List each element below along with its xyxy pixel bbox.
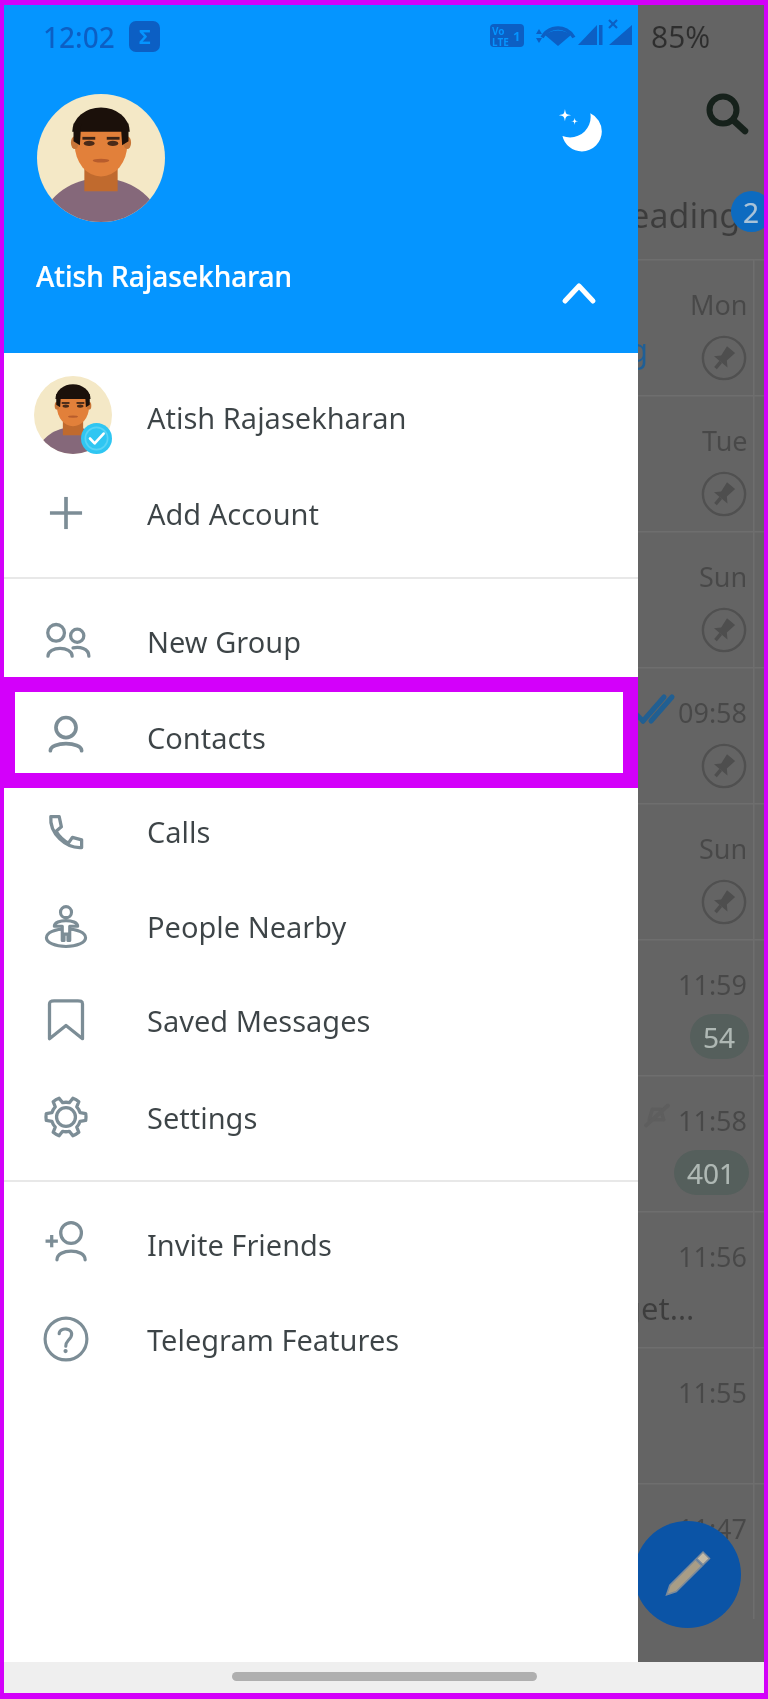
staticText: 11:59 xyxy=(678,966,748,1003)
staticText: Telegram Features xyxy=(147,1320,400,1359)
button[interactable]: Night mode xyxy=(543,94,615,166)
button[interactable]: Expand accounts xyxy=(543,258,615,330)
staticText: 85% xyxy=(651,16,711,57)
button[interactable]: 11:55 xyxy=(638,1347,768,1483)
staticText: 2 xyxy=(743,193,760,231)
button[interactable]: Telegram Features xyxy=(0,1292,638,1386)
staticText: Unreading xyxy=(571,192,741,238)
button[interactable]: Invite Friends xyxy=(0,1197,638,1291)
staticText: New Group xyxy=(147,622,301,661)
button[interactable]: New Group xyxy=(0,594,638,688)
staticText: 1 xyxy=(513,27,521,45)
staticText: Contacts xyxy=(147,718,266,757)
button[interactable]: Saved Messages xyxy=(0,973,638,1067)
staticText: Invite Friends xyxy=(147,1225,332,1264)
staticText: .. xyxy=(622,1015,639,1057)
button[interactable]: 11:58 xyxy=(638,1075,768,1211)
button[interactable]: Tue xyxy=(638,395,768,531)
staticText: Settings xyxy=(147,1098,258,1137)
staticText: Add Account xyxy=(147,494,319,533)
staticText: 11:47 xyxy=(678,1510,748,1547)
staticText: 401 xyxy=(687,1154,736,1192)
button[interactable]: Atish Rajasekharan xyxy=(0,66,520,310)
staticText: Atish Rajasekharan xyxy=(36,257,293,295)
button[interactable]: Contacts xyxy=(0,690,638,784)
button[interactable]: Add Account xyxy=(0,466,638,560)
button[interactable]: Atish Rajasekharan xyxy=(0,370,638,464)
button[interactable]: Settings xyxy=(0,1070,638,1164)
staticText: g xyxy=(628,327,649,372)
button[interactable]: New message xyxy=(634,1521,741,1628)
staticText: Sun xyxy=(699,558,748,595)
staticText: Tue xyxy=(702,422,748,459)
button[interactable]: 11:56 xyxy=(638,1211,768,1347)
button[interactable]: Mon xyxy=(638,259,768,395)
staticText: 11:56 xyxy=(678,1238,748,1275)
staticText: People Nearby xyxy=(147,907,347,946)
staticText: Sun xyxy=(699,830,748,867)
button[interactable]: Unreading xyxy=(560,160,768,258)
staticText: 09:58 xyxy=(678,694,748,731)
staticText: 11:55 xyxy=(678,1374,748,1411)
staticText: 11:58 xyxy=(678,1102,748,1139)
staticText: Vo xyxy=(492,24,505,38)
staticText: 54 xyxy=(703,1018,736,1056)
button[interactable]: 11:47 xyxy=(638,1483,768,1619)
button[interactable]: 09:58 xyxy=(638,667,768,803)
button[interactable]: Sun xyxy=(638,531,768,667)
staticText: Σ xyxy=(139,23,151,50)
staticText: Atish Rajasekharan xyxy=(147,398,407,437)
staticText: 12:02 xyxy=(43,18,115,56)
staticText: Saved Messages xyxy=(147,1001,371,1040)
button[interactable]: People Nearby xyxy=(0,879,638,973)
staticText: Mon xyxy=(690,286,748,323)
button[interactable]: Calls xyxy=(0,784,638,878)
staticText: Calls xyxy=(147,812,211,851)
staticText: LTE xyxy=(492,35,509,47)
button[interactable]: 11:59 xyxy=(638,939,768,1075)
staticText: get… xyxy=(622,1287,695,1329)
button[interactable]: Search xyxy=(690,77,756,143)
button[interactable]: Sun xyxy=(638,803,768,939)
